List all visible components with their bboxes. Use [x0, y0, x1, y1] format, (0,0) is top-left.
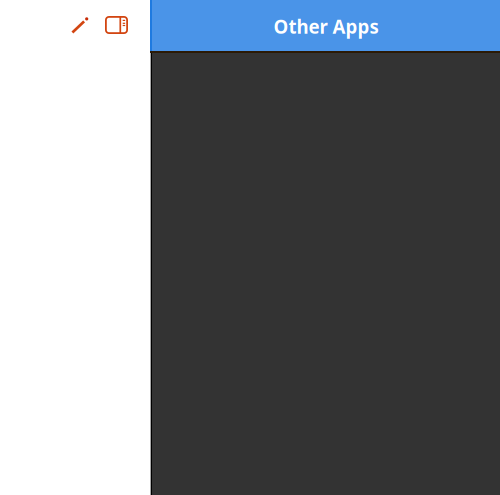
button[interactable]: Compose — [65, 11, 93, 41]
button[interactable]: Toggle Sidebar — [101, 10, 131, 40]
staticText: Other Apps — [273, 14, 378, 39]
